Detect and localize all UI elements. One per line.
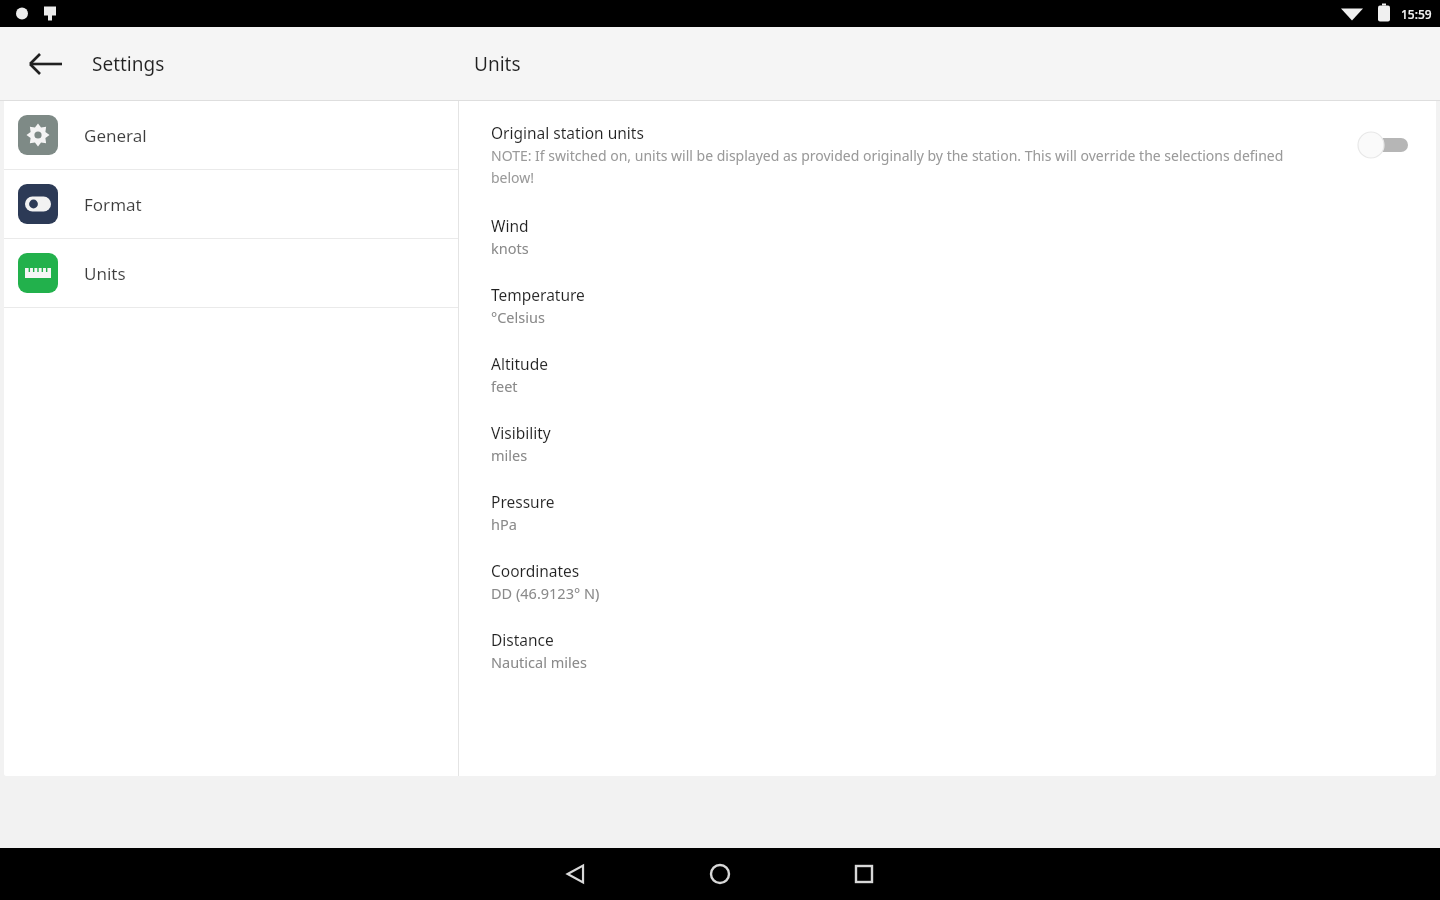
- button[interactable]: Format: [4, 170, 458, 238]
- staticText: Nautical miles: [491, 652, 587, 672]
- staticText: Temperature: [491, 284, 585, 305]
- button[interactable]: Pressure: [459, 491, 1436, 534]
- staticText: knots: [491, 238, 529, 258]
- button[interactable]: Home: [684, 848, 756, 900]
- button[interactable]: Original station units toggle: [1356, 130, 1412, 160]
- staticText: NOTE: If switched on, units will be disp…: [491, 146, 1316, 187]
- button[interactable]: Temperature: [459, 284, 1436, 327]
- staticText: Wind: [491, 215, 529, 236]
- staticText: °Celsius: [491, 307, 545, 327]
- button[interactable]: Distance: [459, 629, 1436, 672]
- staticText: Units: [84, 262, 126, 285]
- staticText: hPa: [491, 514, 517, 534]
- button[interactable]: Back: [26, 44, 66, 84]
- staticText: miles: [491, 445, 528, 465]
- staticText: Settings: [92, 51, 165, 77]
- button[interactable]: Recent apps: [828, 848, 900, 900]
- staticText: General: [84, 124, 147, 147]
- staticText: 15:59: [1401, 6, 1432, 22]
- staticText: Coordinates: [491, 560, 580, 581]
- button[interactable]: Original station units: [459, 116, 1436, 193]
- button[interactable]: Altitude: [459, 353, 1436, 396]
- staticText: Altitude: [491, 353, 548, 374]
- button[interactable]: Coordinates: [459, 560, 1436, 603]
- staticText: Units: [474, 51, 521, 77]
- button[interactable]: Wind: [459, 215, 1436, 258]
- staticText: Pressure: [491, 491, 555, 512]
- staticText: feet: [491, 376, 518, 396]
- button[interactable]: Units: [4, 239, 458, 307]
- button[interactable]: Visibility: [459, 422, 1436, 465]
- staticText: Visibility: [491, 422, 551, 443]
- button[interactable]: Back: [540, 848, 612, 900]
- button[interactable]: General: [4, 101, 458, 169]
- staticText: Original station units: [491, 122, 644, 143]
- staticText: Distance: [491, 629, 554, 650]
- staticText: Format: [84, 193, 142, 216]
- staticText: DD (46.9123° N): [491, 583, 600, 603]
